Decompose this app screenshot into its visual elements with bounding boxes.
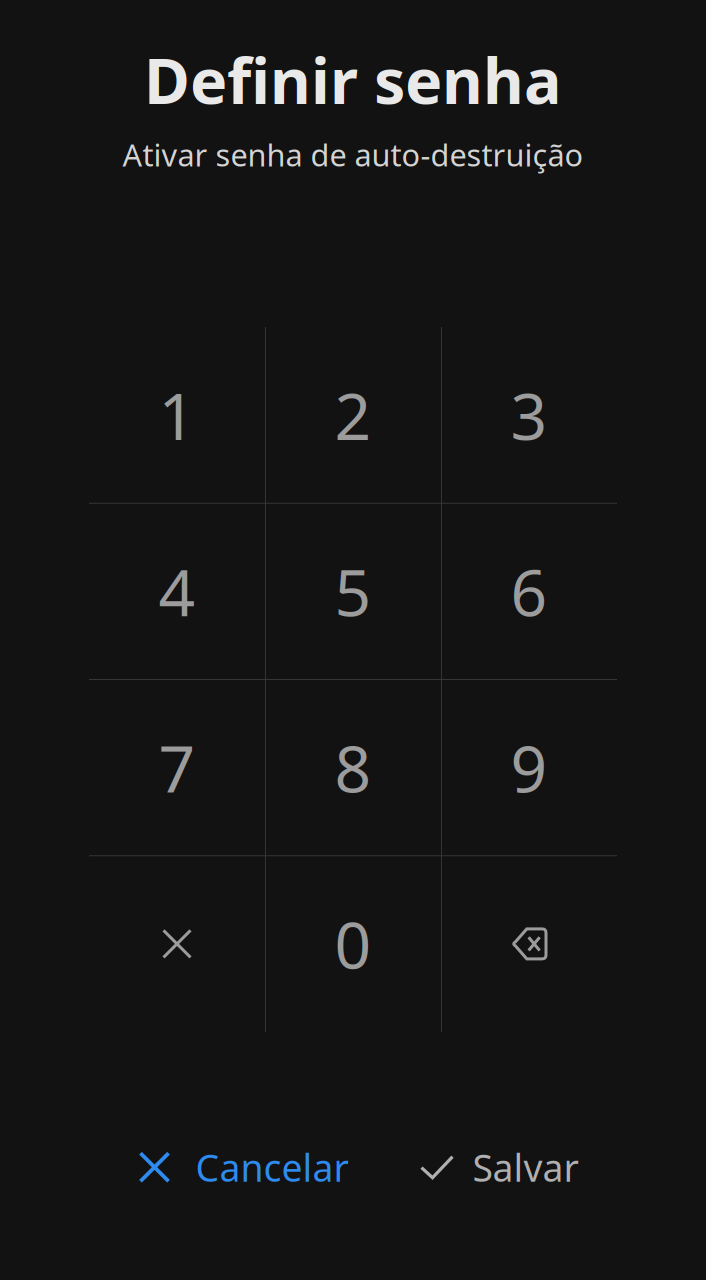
staticText: 0 [334,901,371,986]
staticText: 6 [510,549,547,634]
button[interactable]: Salvar [405,1130,594,1204]
staticText: Salvar [472,1142,578,1192]
button[interactable]: 2 [265,327,441,503]
staticText: Definir senha [144,38,562,121]
button[interactable]: 4 [89,503,265,679]
staticText: 8 [334,725,371,810]
button[interactable]: Clear [89,856,265,1032]
staticText: 4 [158,549,195,634]
button[interactable]: 0 [265,856,441,1032]
staticText: 7 [158,725,195,810]
button[interactable]: 5 [265,503,441,679]
button[interactable]: 9 [441,679,617,856]
button[interactable]: 3 [441,327,617,503]
button[interactable]: Delete [441,856,617,1032]
button[interactable]: Cancelar [128,1130,368,1204]
staticText: 3 [510,373,547,458]
staticText: Cancelar [195,1142,348,1192]
staticText: 5 [334,549,371,634]
button[interactable]: 6 [441,503,617,679]
staticText: 9 [510,725,547,810]
staticText: 1 [158,373,195,458]
button[interactable]: 8 [265,679,441,856]
button[interactable]: 1 [89,327,265,503]
staticText: 2 [334,373,371,458]
button[interactable]: 7 [89,679,265,856]
staticText: Ativar senha de auto-destruição [122,134,583,175]
